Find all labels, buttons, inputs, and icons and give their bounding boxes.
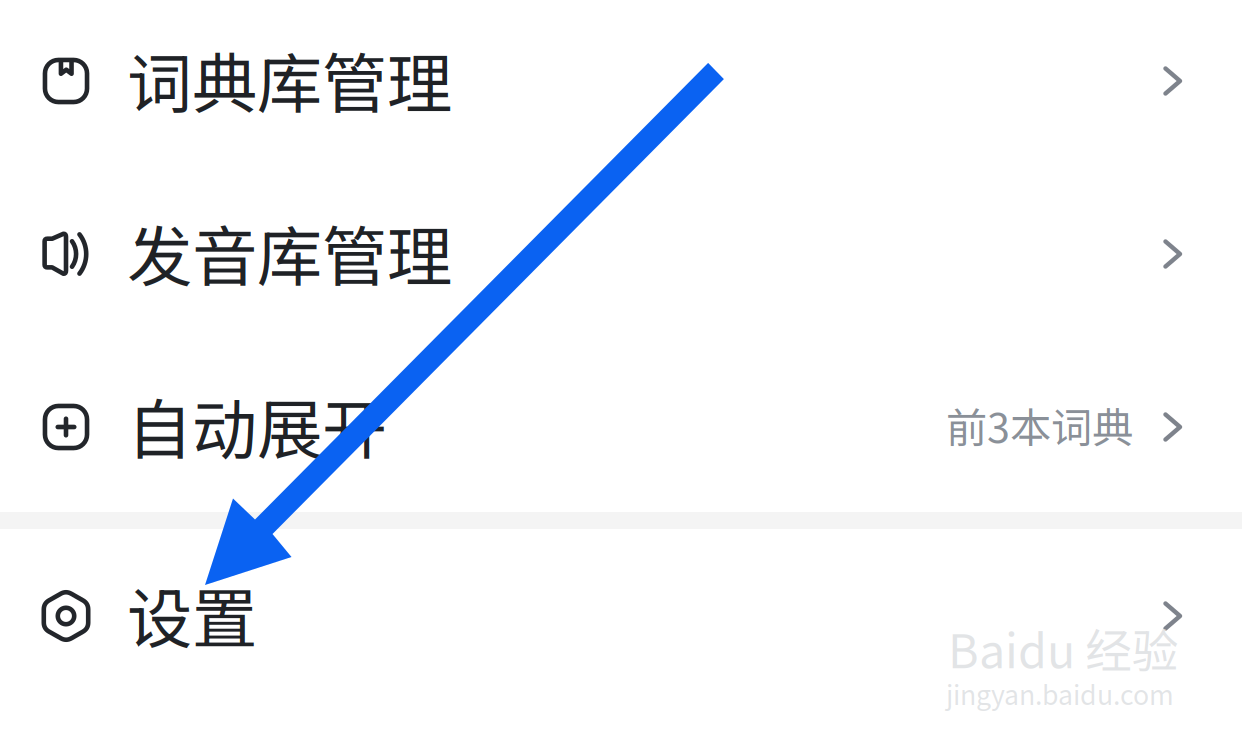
button[interactable]: 词典库管理 [0,0,1242,165]
staticText: 前3本词典 [946,395,1133,455]
staticText: Baidu 经验 [948,614,1179,682]
staticText: 自动展开 [127,378,387,473]
staticText: 设置 [127,567,257,662]
staticText: jingyan.baidu.com [946,674,1174,713]
staticText: 发音库管理 [127,205,452,300]
button[interactable]: 发音库管理 [0,170,1242,338]
staticText: 词典库管理 [127,32,452,127]
button[interactable]: 自动展开 前3本词典 [0,343,1242,511]
button[interactable]: 设置 [0,532,1242,700]
